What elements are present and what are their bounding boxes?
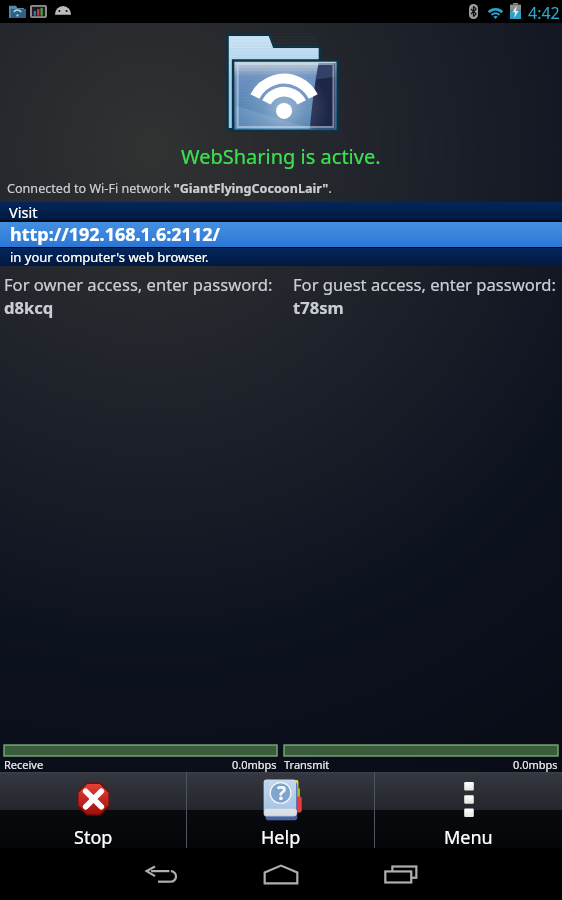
staticText: Stop [74,825,113,848]
button[interactable]: http://192.168.1.6:2112/ [0,222,562,247]
button[interactable]: Recent apps [372,853,430,895]
staticText: For owner access, enter password: [4,273,273,296]
button[interactable]: Home [252,853,310,895]
staticText: Transmit [284,757,330,772]
staticText: ? [277,780,287,806]
staticText: t78sm [293,296,344,319]
staticText: For guest access, enter password: [293,273,556,296]
staticText: http://192.168.1.6:2112/ [10,222,220,247]
staticText: Help [261,825,301,848]
staticText: 0.0mbps [513,757,558,772]
button[interactable]: ? [187,772,374,848]
button[interactable]: Stop [0,772,186,848]
staticText: 4:42 [528,2,560,24]
staticText: Visit [9,202,38,220]
staticText: d8kcq [4,296,54,319]
button[interactable]: Menu [375,772,562,848]
staticText: Connected to Wi-Fi network "GiantFlyingC… [7,180,332,197]
staticText: WebSharing is active. [181,143,381,170]
staticText: Receive [4,757,44,772]
staticText: Menu [444,825,493,848]
staticText: 0.0mbps [232,757,277,772]
button[interactable]: Back [132,853,190,895]
staticText: in your computer's web browser. [10,248,209,266]
